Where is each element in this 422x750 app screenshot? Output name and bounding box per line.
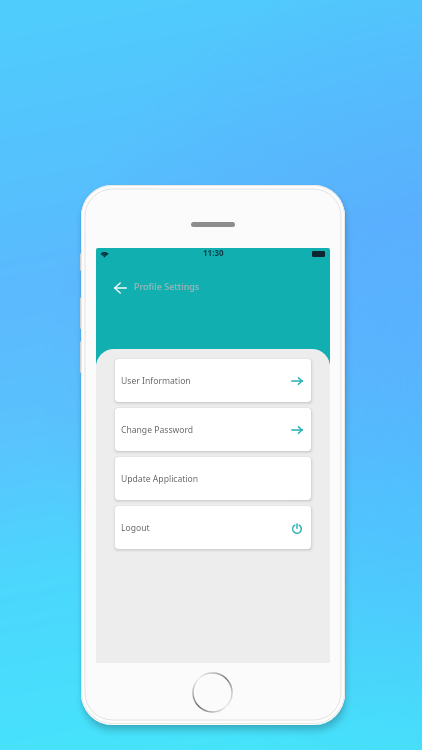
other: Change Password (291, 424, 303, 436)
button[interactable]: Back (114, 282, 127, 294)
button[interactable]: User Information (115, 359, 311, 402)
button[interactable]: Update Application (115, 457, 311, 500)
staticText: Logout (121, 522, 150, 534)
staticText: 11:30 (203, 248, 224, 258)
other: Power off (291, 522, 303, 534)
staticText: User Information (121, 375, 191, 387)
staticText: Profile Settings (134, 280, 200, 292)
staticText: Update Application (121, 473, 199, 485)
staticText: Change Password (121, 424, 194, 436)
button[interactable]: Change Password (115, 408, 311, 451)
other: User Information (291, 375, 303, 387)
button[interactable]: Logout (115, 506, 311, 549)
